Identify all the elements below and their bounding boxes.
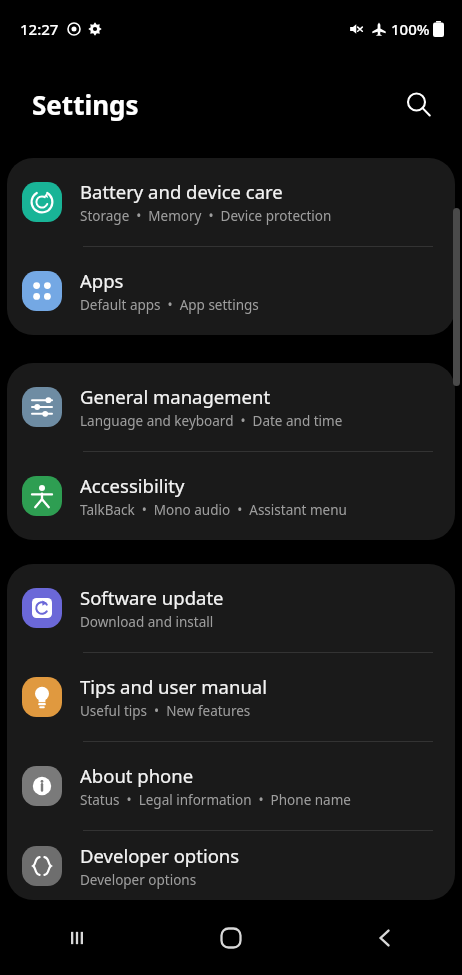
staticText: TalkBack • Mono audio • Assistant menu bbox=[80, 501, 347, 519]
button[interactable]: Accessibility bbox=[7, 452, 455, 540]
staticText: Settings bbox=[32, 87, 139, 122]
staticText: About phone bbox=[80, 763, 194, 788]
button[interactable]: Apps bbox=[7, 247, 455, 335]
staticText: Status • Legal information • Phone name bbox=[80, 791, 351, 809]
button[interactable]: Search bbox=[396, 82, 440, 126]
staticText: Storage • Memory • Device protection bbox=[80, 207, 332, 225]
button[interactable]: General management bbox=[7, 363, 455, 451]
staticText: Tips and user manual bbox=[80, 674, 267, 699]
staticText: General management bbox=[80, 384, 271, 409]
button[interactable]: About phone bbox=[7, 742, 455, 830]
staticText: Language and keyboard • Date and time bbox=[80, 412, 343, 430]
staticText: Default apps • App settings bbox=[80, 296, 259, 314]
staticText: Battery and device care bbox=[80, 179, 283, 204]
staticText: 12:27 bbox=[20, 19, 59, 39]
staticText: 100% bbox=[391, 19, 430, 39]
button[interactable]: Recents bbox=[0, 900, 154, 975]
staticText: Developer options bbox=[80, 843, 240, 868]
button[interactable]: Battery and device care bbox=[7, 158, 455, 246]
button[interactable]: Home bbox=[154, 900, 308, 975]
staticText: Download and install bbox=[80, 613, 214, 631]
staticText: Software update bbox=[80, 585, 224, 610]
staticText: Useful tips • New features bbox=[80, 702, 251, 720]
staticText: Apps bbox=[80, 268, 124, 293]
staticText: Developer options bbox=[80, 871, 197, 889]
button[interactable]: Tips and user manual bbox=[7, 653, 455, 741]
button[interactable]: Back bbox=[308, 900, 462, 975]
button[interactable]: Software update bbox=[7, 564, 455, 652]
staticText: Accessibility bbox=[80, 473, 185, 498]
button[interactable]: Developer options bbox=[7, 831, 455, 900]
